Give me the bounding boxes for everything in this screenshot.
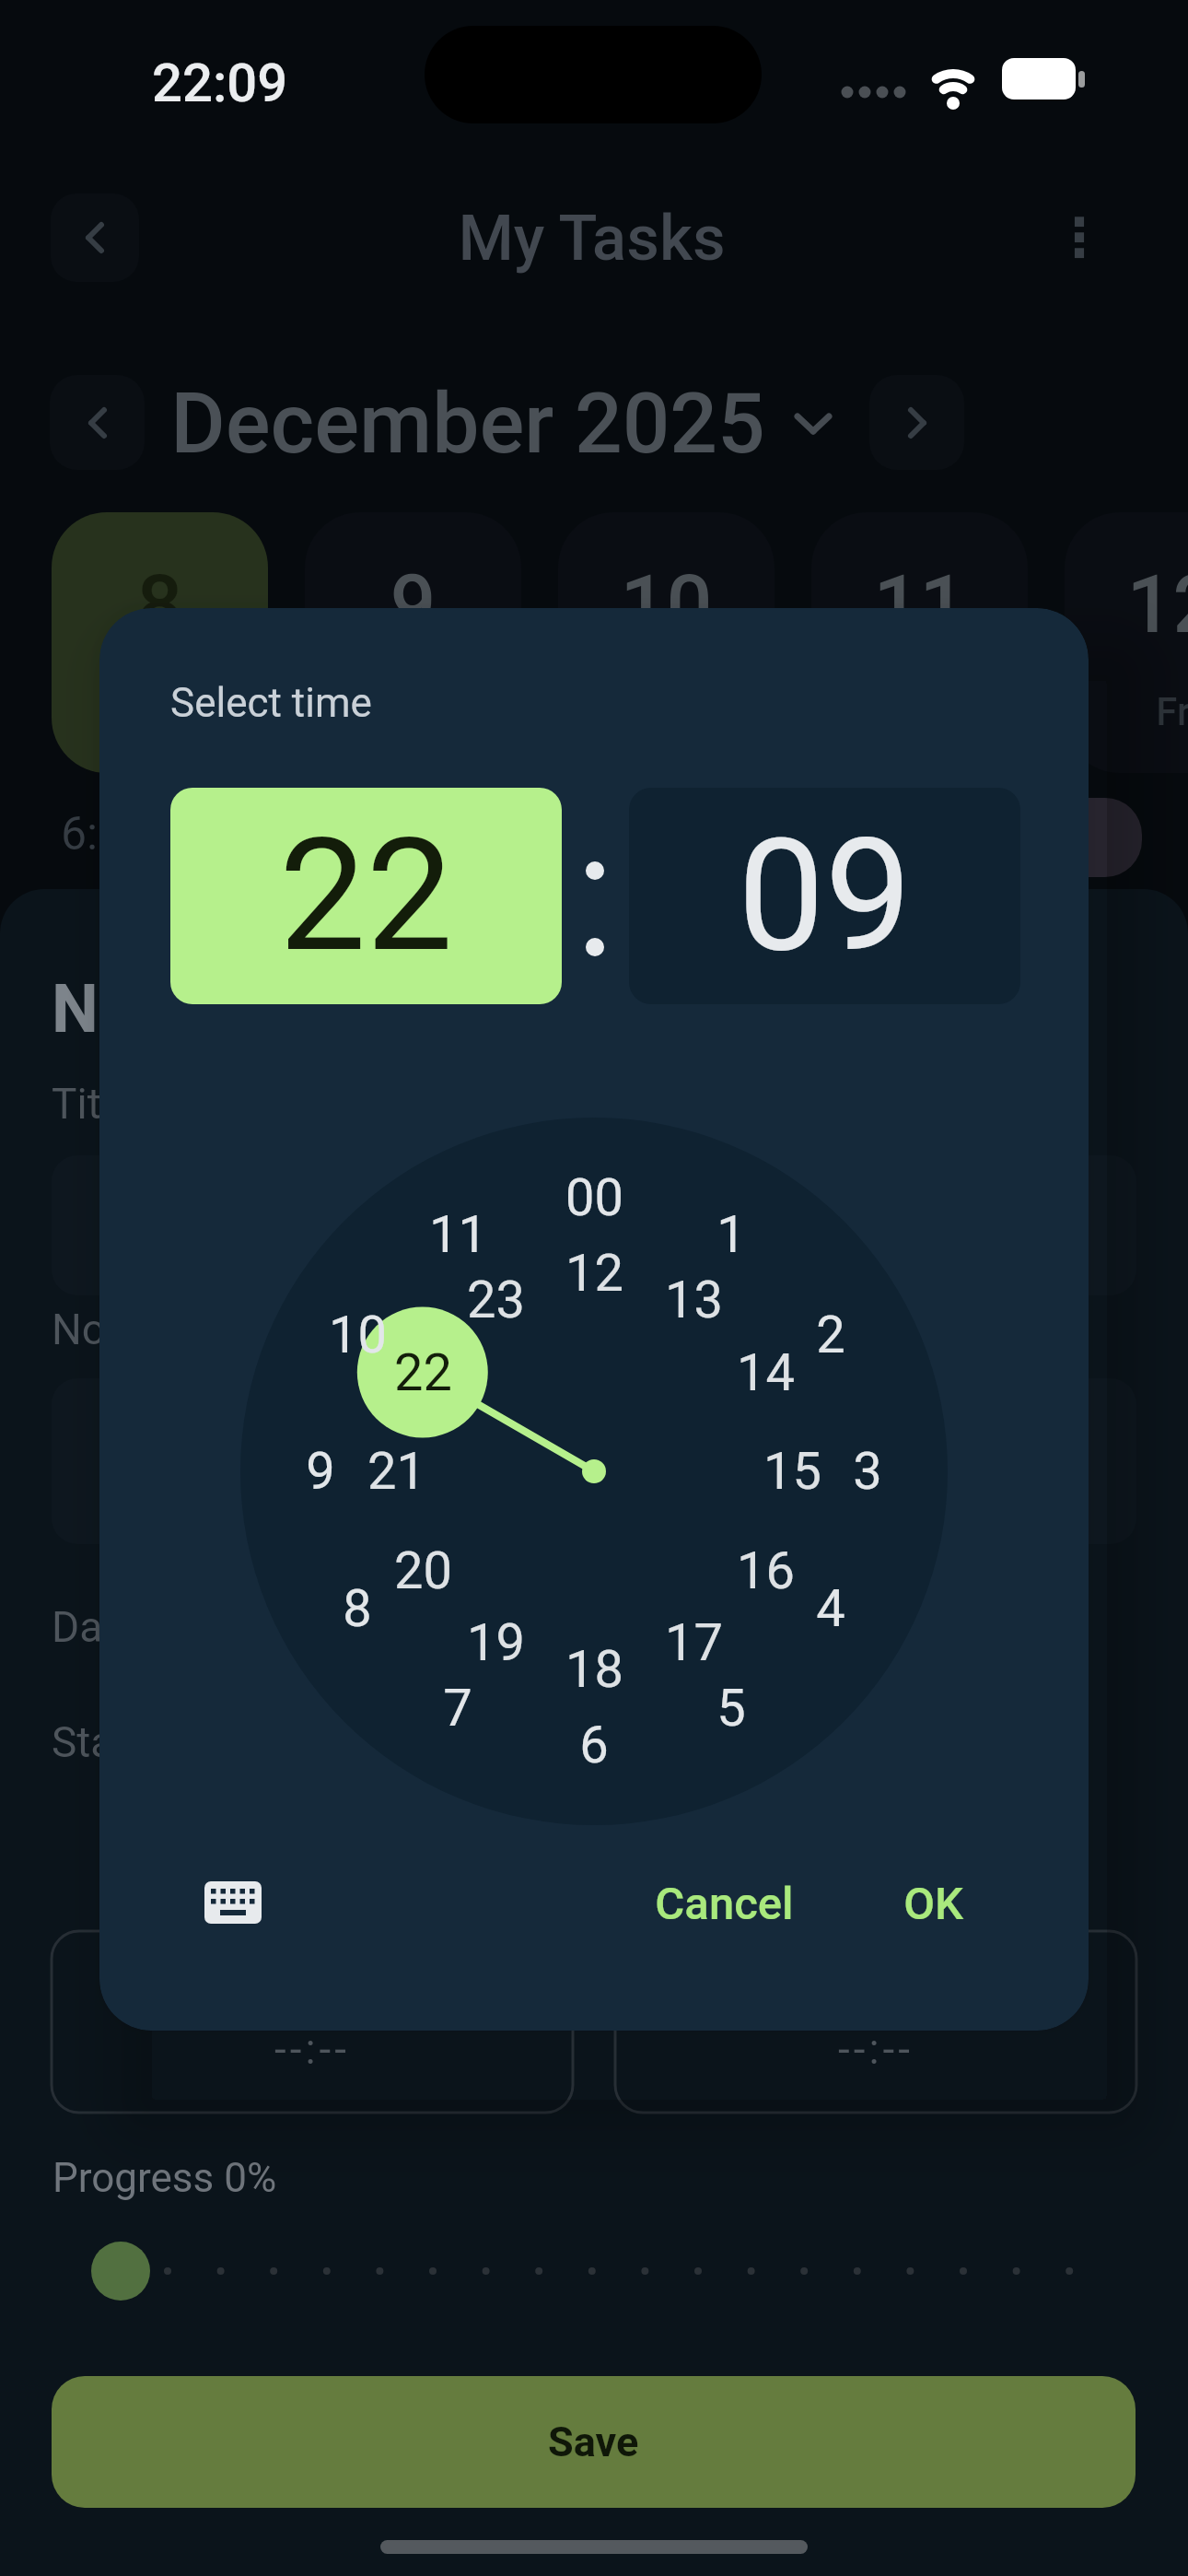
button[interactable]: 18 bbox=[530, 1623, 658, 1715]
button[interactable]: ⋮ bbox=[1024, 164, 1135, 311]
staticText: 22 bbox=[394, 1342, 452, 1403]
button[interactable] bbox=[811, 512, 1028, 773]
staticText: 4 bbox=[816, 1578, 845, 1639]
button[interactable]: 7 bbox=[393, 1662, 522, 1754]
button[interactable]: Cancel bbox=[595, 1848, 853, 1959]
button[interactable]: 13 bbox=[629, 1254, 758, 1346]
button[interactable]: 14 bbox=[701, 1327, 830, 1419]
staticText: 16 bbox=[737, 1540, 795, 1601]
button[interactable]: --:-- bbox=[615, 1975, 1136, 2123]
button[interactable]: 16 bbox=[701, 1525, 830, 1617]
button[interactable] bbox=[1065, 512, 1188, 773]
staticText: 00 bbox=[565, 1167, 623, 1228]
button[interactable] bbox=[305, 512, 521, 773]
staticText: 11 bbox=[873, 556, 966, 651]
staticText: Cancel bbox=[655, 1878, 794, 1930]
staticText: --:-- bbox=[274, 2024, 350, 2074]
staticText: 10 bbox=[329, 1305, 387, 1365]
staticText: --:-- bbox=[838, 2024, 914, 2074]
button[interactable]: 8 bbox=[293, 1563, 422, 1655]
staticText: 6:00 PM bbox=[61, 807, 231, 861]
button[interactable] bbox=[91, 2242, 150, 2301]
staticText: 20 bbox=[394, 1540, 452, 1601]
button[interactable]: 20 bbox=[358, 1525, 487, 1617]
staticText: 23 bbox=[467, 1270, 525, 1330]
button[interactable] bbox=[50, 375, 145, 470]
button[interactable] bbox=[52, 512, 268, 773]
button[interactable]: 21 bbox=[332, 1425, 460, 1517]
staticText: Select time bbox=[170, 679, 372, 727]
staticText: December 2025 bbox=[170, 375, 765, 474]
button[interactable]: 23 bbox=[431, 1254, 560, 1346]
staticText: 21 bbox=[367, 1441, 425, 1502]
staticText: My Tasks bbox=[458, 201, 726, 275]
button[interactable]: 5 bbox=[667, 1662, 796, 1754]
staticText: 12 bbox=[565, 1243, 623, 1304]
staticText: 3 bbox=[853, 1441, 882, 1502]
staticText: 9 bbox=[390, 556, 437, 651]
staticText: Date bbox=[52, 1602, 139, 1652]
staticText: 10 bbox=[620, 556, 713, 651]
staticText: Notes bbox=[52, 1305, 165, 1354]
staticText: Mo bbox=[132, 689, 188, 734]
staticText: 6 bbox=[579, 1715, 609, 1775]
staticText: Fr bbox=[1156, 689, 1188, 734]
button[interactable] bbox=[204, 1881, 263, 1926]
button[interactable]: --:-- bbox=[52, 1975, 573, 2123]
staticText: 19 bbox=[467, 1612, 525, 1673]
button[interactable]: 00 bbox=[530, 1152, 658, 1244]
button[interactable]: 19 bbox=[431, 1597, 560, 1689]
button[interactable]: 15 bbox=[728, 1425, 856, 1517]
button[interactable]: 22 bbox=[358, 1327, 487, 1419]
staticText: 22 bbox=[279, 805, 453, 987]
staticText: 09 bbox=[738, 805, 912, 987]
staticText: 9 bbox=[306, 1441, 335, 1502]
button[interactable]: OK bbox=[841, 1848, 1025, 1959]
staticText: OK bbox=[903, 1878, 963, 1930]
staticText: 18 bbox=[565, 1639, 623, 1700]
staticText: 5 bbox=[716, 1678, 746, 1739]
button[interactable]: 9 bbox=[256, 1425, 385, 1517]
staticText: 2 bbox=[816, 1305, 845, 1365]
button[interactable]: 22 bbox=[170, 788, 562, 1004]
button[interactable]: Save bbox=[52, 2376, 1136, 2508]
button[interactable]: 2 bbox=[766, 1289, 895, 1381]
staticText: 1 bbox=[716, 1204, 746, 1265]
button[interactable]: 1 bbox=[667, 1188, 796, 1281]
button[interactable] bbox=[51, 193, 139, 282]
staticText: Start Time bbox=[52, 1717, 249, 1767]
staticText: 14 bbox=[737, 1342, 795, 1403]
staticText: 13 bbox=[665, 1270, 723, 1330]
button[interactable]: 6 bbox=[530, 1699, 658, 1791]
button[interactable] bbox=[869, 375, 964, 470]
staticText: 17 bbox=[665, 1612, 723, 1673]
button[interactable] bbox=[558, 512, 775, 773]
staticText: Title bbox=[52, 1079, 134, 1129]
staticText: 22:09 bbox=[152, 52, 288, 114]
button[interactable]: 3 bbox=[803, 1425, 932, 1517]
staticText: 8 bbox=[136, 556, 183, 651]
button[interactable]: 17 bbox=[629, 1597, 758, 1689]
button[interactable]: 09 bbox=[629, 788, 1020, 1004]
staticText: ⋮ bbox=[1053, 206, 1106, 269]
button[interactable]: 11 bbox=[393, 1188, 522, 1281]
staticText: End Time bbox=[615, 1717, 792, 1767]
staticText: 7 bbox=[443, 1678, 472, 1739]
staticText: 15 bbox=[763, 1441, 821, 1502]
button[interactable]: 10 bbox=[293, 1289, 422, 1381]
staticText: 11 bbox=[429, 1204, 487, 1265]
staticText: 8 bbox=[343, 1578, 372, 1639]
staticText: New Task bbox=[52, 970, 339, 1048]
staticText: Save bbox=[548, 2418, 639, 2466]
staticText: 12 bbox=[1126, 556, 1188, 651]
button[interactable]: 12 bbox=[530, 1227, 658, 1319]
staticText: Progress 0% bbox=[52, 2154, 277, 2202]
button[interactable]: 4 bbox=[766, 1563, 895, 1655]
